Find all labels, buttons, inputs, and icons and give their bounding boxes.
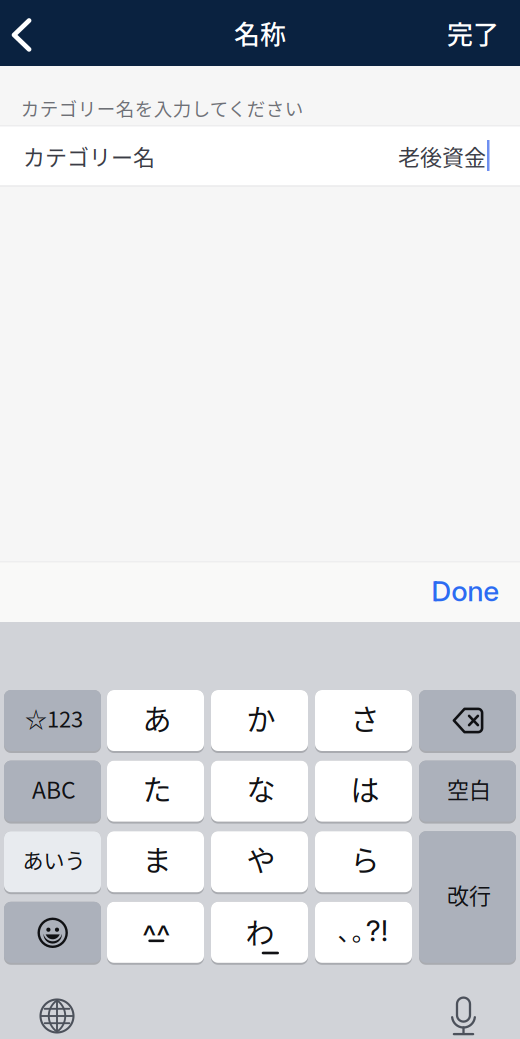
staticText: や	[246, 838, 275, 880]
staticText: 、	[337, 913, 361, 948]
button[interactable]: な	[0, 0, 97, 63]
staticText: カテゴリー名を入力してください	[21, 95, 304, 121]
staticText: た	[142, 768, 171, 810]
staticText: ま	[142, 838, 171, 880]
staticText: カテゴリー名	[23, 140, 155, 172]
button[interactable]: ☆123	[0, 0, 97, 63]
button[interactable]: ABC	[0, 0, 97, 63]
staticText: あ	[142, 697, 171, 739]
button[interactable]: wa	[0, 0, 97, 63]
button[interactable]: さ	[0, 0, 97, 63]
button[interactable]: Emoji	[0, 0, 97, 63]
button[interactable]: た	[0, 0, 97, 63]
button[interactable]: Next keyboard	[28, 987, 85, 1039]
staticText: ☆123	[25, 702, 83, 734]
staticText: 名称	[234, 14, 286, 52]
button[interactable]: Back	[0, 0, 45, 66]
button[interactable]: Punctuation	[0, 0, 97, 63]
button[interactable]: あいう	[0, 0, 97, 63]
button[interactable]: か	[0, 0, 97, 63]
staticText: 老後資金	[398, 140, 486, 172]
button[interactable]: Kaomoji	[0, 0, 97, 63]
staticText: 。	[352, 913, 376, 948]
staticText: 空白	[447, 773, 491, 805]
staticText: あいう	[22, 844, 85, 874]
staticText: 完了	[447, 14, 499, 52]
staticText: ら	[350, 838, 379, 880]
button[interactable]: ら	[0, 0, 97, 63]
button[interactable]: 改行	[0, 0, 97, 134]
staticText: か	[246, 697, 275, 739]
staticText: さ	[350, 697, 379, 739]
button[interactable]: 完了	[435, 0, 511, 66]
button[interactable]: Done	[409, 568, 520, 614]
button[interactable]: Dictation	[439, 986, 488, 1039]
button[interactable]: あ	[0, 0, 97, 63]
staticText: ^^	[142, 918, 170, 955]
staticText: わ	[245, 911, 274, 953]
staticText: は	[350, 768, 379, 810]
staticText: ABC	[32, 772, 76, 805]
button[interactable]: は	[0, 0, 97, 63]
staticText: ?!	[366, 913, 388, 948]
button[interactable]: 空白	[0, 0, 97, 63]
staticText: 改行	[447, 879, 491, 910]
button[interactable]: や	[0, 0, 97, 63]
staticText: Done	[431, 574, 499, 608]
button[interactable]: Delete	[0, 0, 97, 63]
staticText: な	[246, 768, 275, 810]
button[interactable]: ま	[0, 0, 97, 63]
